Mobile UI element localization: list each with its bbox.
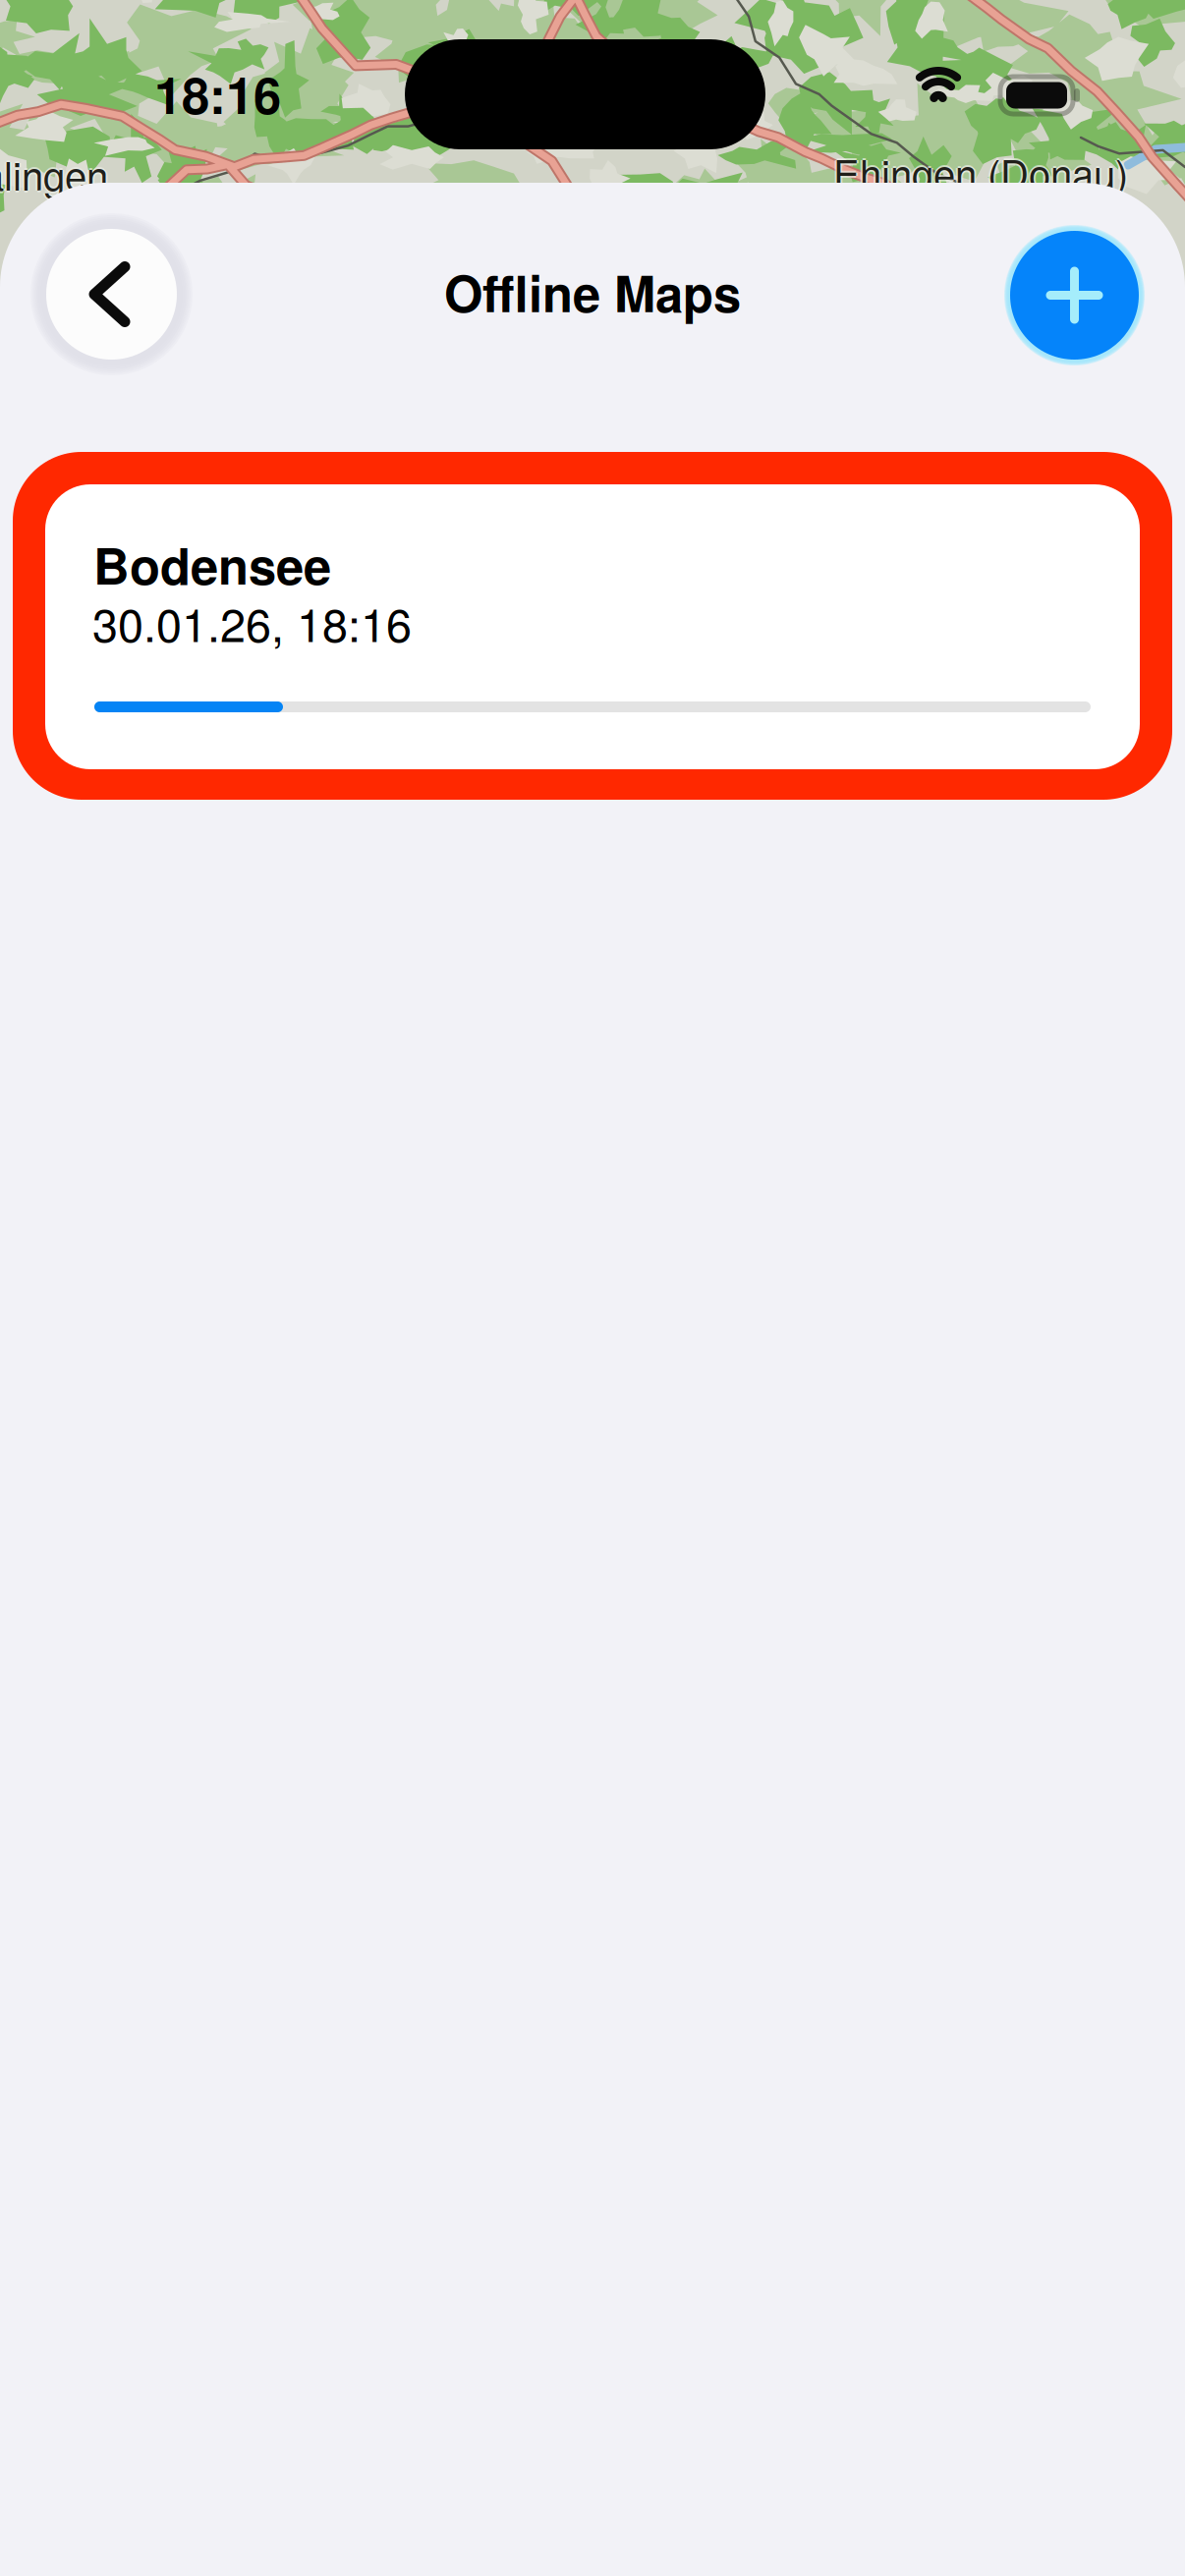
staticText: Ehingen (Donau): [831, 143, 1126, 200]
staticText: alingen: [0, 145, 108, 202]
staticText: 30.01.26, 18:16: [92, 589, 412, 655]
button[interactable]: Back: [30, 213, 193, 375]
staticText: alingen: [0, 147, 108, 204]
button[interactable]: Add offline map: [1002, 223, 1147, 367]
staticText: alingen: [0, 143, 108, 200]
button[interactable]: Bodensee: [13, 452, 1172, 800]
staticText: alingen: [0, 145, 110, 202]
staticText: 18:16: [154, 58, 281, 129]
staticText: Ehingen (Donau): [835, 143, 1130, 200]
staticText: Bodensee: [93, 529, 331, 600]
staticText: Ehingen (Donau): [833, 141, 1128, 198]
staticText: Ehingen (Donau): [833, 143, 1128, 200]
staticText: Offline Maps: [444, 256, 741, 327]
staticText: alingen: [0, 145, 106, 202]
staticText: Ehingen (Donau): [833, 145, 1128, 202]
